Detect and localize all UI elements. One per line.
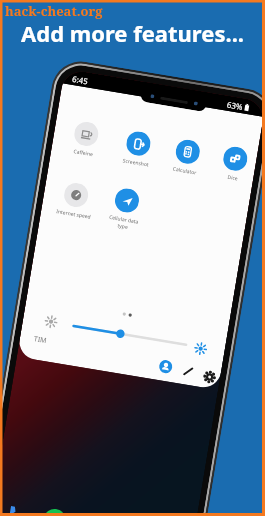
button[interactable]: Caffeine: [60, 118, 111, 160]
staticText: Cellular data type: [107, 214, 139, 231]
button[interactable]: Dice: [209, 143, 258, 185]
button[interactable]: Spotify: [42, 507, 67, 516]
button[interactable]: Edit: [182, 365, 195, 378]
staticText: TIM: [33, 334, 48, 346]
staticText: Dice: [227, 174, 239, 182]
staticText: Calculator: [172, 166, 197, 176]
staticText: Screenshot: [122, 157, 150, 169]
staticText: Caffeine: [73, 148, 94, 158]
button[interactable]: User: [158, 359, 173, 374]
staticText: 6:45: [71, 73, 89, 86]
staticText: hack-cheat.org: [5, 2, 103, 20]
button[interactable]: Calculator: [161, 136, 212, 178]
button[interactable]: Internet speed: [50, 179, 101, 222]
button[interactable]: Settings: [203, 371, 216, 383]
staticText: Add more features...: [21, 18, 244, 48]
staticText: Internet speed: [56, 208, 91, 221]
button[interactable]: Screenshot: [112, 128, 163, 170]
staticText: 63%: [226, 99, 244, 112]
button[interactable]: Phone: [3, 501, 29, 516]
button[interactable]: Cellular data type: [99, 185, 152, 233]
